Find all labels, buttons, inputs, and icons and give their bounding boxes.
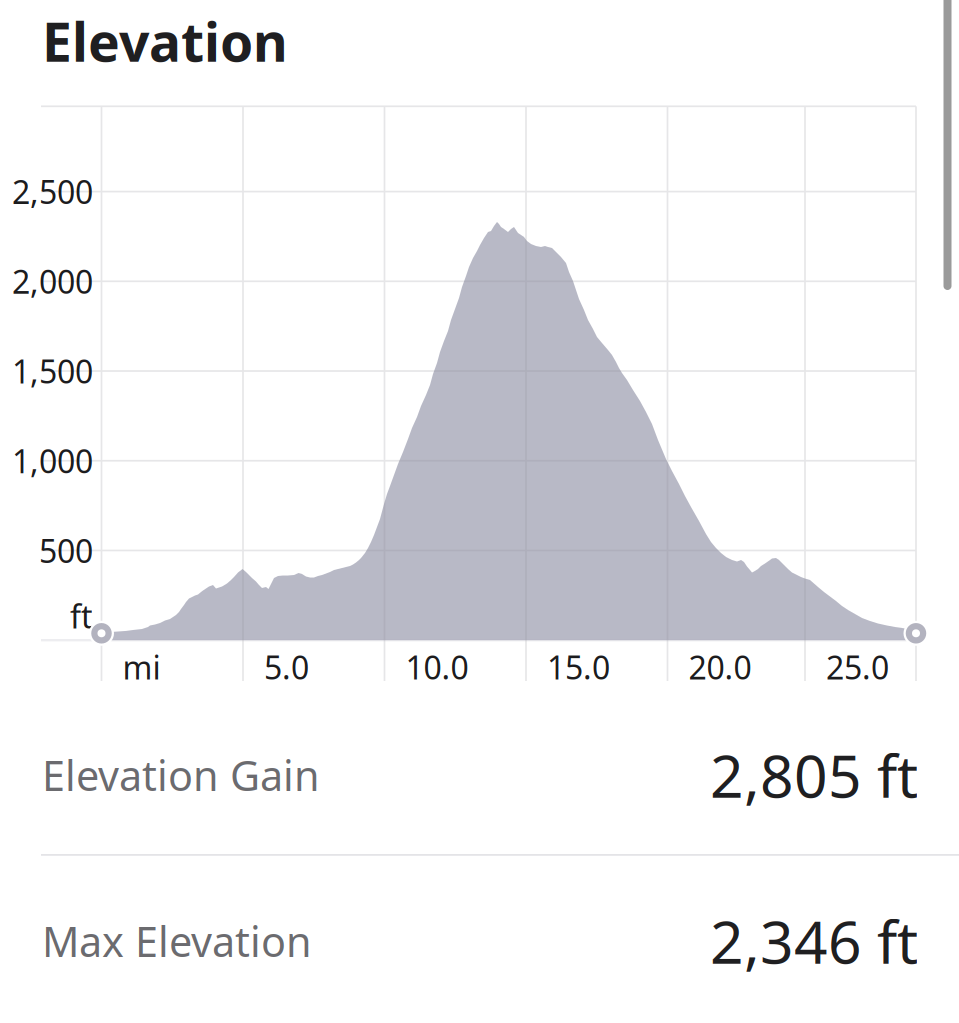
staticText: Elevation Gain bbox=[42, 748, 320, 802]
staticText: 5.0 bbox=[264, 646, 309, 688]
staticText: 25.0 bbox=[826, 646, 889, 688]
staticText: 2,000 bbox=[12, 260, 93, 303]
staticText: ft bbox=[70, 595, 93, 637]
staticText: 1,000 bbox=[12, 439, 93, 482]
button[interactable]: Max Elevation bbox=[0, 878, 959, 1004]
staticText: 10.0 bbox=[405, 646, 468, 688]
staticText: 1,500 bbox=[12, 350, 93, 392]
staticText: 20.0 bbox=[688, 646, 751, 688]
staticText: 2,346 ft bbox=[710, 902, 918, 980]
staticText: Elevation bbox=[42, 6, 288, 76]
staticText: Max Elevation bbox=[42, 914, 312, 968]
button[interactable]: Elevation Gain bbox=[0, 712, 959, 838]
staticText: 15.0 bbox=[547, 646, 610, 688]
button[interactable]: Trim end bbox=[896, 613, 936, 653]
staticText: 500 bbox=[39, 529, 93, 572]
staticText: 2,500 bbox=[12, 170, 93, 213]
button[interactable]: Trim start bbox=[81, 613, 121, 653]
staticText: 2,805 ft bbox=[710, 736, 918, 814]
staticText: mi bbox=[122, 646, 160, 688]
